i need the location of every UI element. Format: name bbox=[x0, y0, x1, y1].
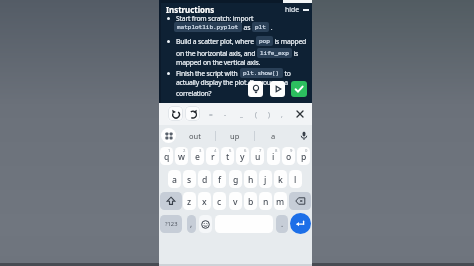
button[interactable]: 2 bbox=[175, 147, 188, 165]
button[interactable] bbox=[289, 192, 311, 210]
button[interactable]: 5 bbox=[221, 147, 234, 165]
staticText: hide bbox=[285, 5, 299, 14]
staticText: 3 bbox=[199, 148, 202, 154]
button[interactable]: 6 bbox=[236, 147, 249, 165]
staticText: ?123 bbox=[165, 220, 178, 228]
staticText: 4 bbox=[214, 148, 217, 154]
button[interactable]: n bbox=[259, 192, 272, 210]
staticText: j bbox=[264, 174, 267, 186]
button[interactable]: a bbox=[168, 170, 181, 188]
staticText: z bbox=[187, 196, 192, 208]
staticText: up bbox=[230, 131, 240, 141]
staticText: correlation? bbox=[176, 89, 212, 98]
staticText: c bbox=[217, 196, 222, 208]
button[interactable]: hide bbox=[285, 5, 309, 14]
button[interactable]: d bbox=[198, 170, 211, 188]
button[interactable]: g bbox=[229, 170, 242, 188]
staticText: 0 bbox=[305, 148, 308, 154]
staticText: Finish the script with bbox=[176, 69, 240, 78]
staticText: pop bbox=[259, 37, 270, 45]
button[interactable] bbox=[290, 213, 311, 234]
button[interactable]: h bbox=[244, 170, 257, 188]
button[interactable]: x bbox=[198, 192, 211, 210]
staticText: o bbox=[286, 151, 292, 163]
staticText: 1 bbox=[168, 148, 171, 154]
button[interactable]: 8 bbox=[267, 147, 280, 165]
button[interactable]: 7 bbox=[251, 147, 264, 165]
button[interactable]: j bbox=[259, 170, 272, 188]
button[interactable] bbox=[270, 81, 285, 97]
button[interactable]: f bbox=[213, 170, 226, 188]
staticText: a bbox=[271, 131, 276, 141]
staticText: , bbox=[281, 110, 283, 119]
staticText: y bbox=[240, 151, 245, 163]
button[interactable] bbox=[160, 192, 182, 210]
button[interactable]: ?123 bbox=[160, 215, 182, 233]
staticText: n bbox=[263, 196, 269, 208]
button[interactable]: z bbox=[183, 192, 196, 210]
button[interactable]: 0 bbox=[297, 147, 310, 165]
staticText: = bbox=[209, 110, 213, 119]
staticText: g bbox=[233, 174, 239, 186]
staticText: out bbox=[189, 131, 201, 141]
staticText: plt.show() bbox=[243, 69, 280, 77]
staticText: l bbox=[294, 174, 297, 186]
staticText: matplotlib.pyplot bbox=[177, 23, 239, 31]
staticText: is bbox=[292, 49, 299, 58]
button[interactable]: l bbox=[289, 170, 302, 188]
staticText: to bbox=[283, 69, 291, 78]
staticText: 7 bbox=[259, 148, 262, 154]
button[interactable]: v bbox=[229, 192, 242, 210]
staticText: plt bbox=[255, 23, 266, 31]
staticText: , bbox=[190, 218, 193, 229]
button[interactable] bbox=[199, 215, 212, 233]
button[interactable] bbox=[185, 106, 200, 121]
staticText: _ bbox=[240, 110, 243, 119]
staticText: as bbox=[242, 23, 252, 32]
staticText: ) bbox=[268, 110, 270, 119]
staticText: on the horizontal axis, and bbox=[176, 49, 257, 58]
staticText: s bbox=[187, 174, 192, 186]
staticText: f bbox=[218, 174, 222, 186]
button[interactable]: a bbox=[260, 127, 286, 144]
staticText: 9 bbox=[290, 148, 293, 154]
button[interactable]: up bbox=[222, 127, 248, 144]
staticText: m bbox=[276, 196, 285, 208]
staticText: k bbox=[278, 174, 283, 186]
staticText: - bbox=[224, 110, 227, 119]
button[interactable] bbox=[161, 128, 176, 143]
staticText: Build a scatter plot, where bbox=[176, 37, 256, 46]
button[interactable]: b bbox=[244, 192, 257, 210]
button[interactable]: 4 bbox=[206, 147, 219, 165]
button[interactable]: , bbox=[187, 215, 196, 233]
button[interactable]: k bbox=[274, 170, 287, 188]
button[interactable]: 9 bbox=[282, 147, 295, 165]
button[interactable]: s bbox=[183, 170, 196, 188]
staticText: 8 bbox=[275, 148, 278, 154]
button[interactable] bbox=[293, 107, 306, 120]
staticText: life_exp bbox=[260, 49, 289, 57]
staticText: 2 bbox=[183, 148, 186, 154]
staticText: p bbox=[301, 151, 307, 163]
staticText: . bbox=[269, 23, 273, 32]
staticText: . bbox=[281, 218, 284, 229]
button[interactable]: c bbox=[213, 192, 226, 210]
staticText: u bbox=[255, 151, 261, 163]
button[interactable]: m bbox=[274, 192, 287, 210]
staticText: e bbox=[195, 151, 200, 163]
button[interactable]: 3 bbox=[191, 147, 204, 165]
button[interactable] bbox=[248, 81, 263, 97]
button[interactable]: out bbox=[182, 127, 208, 144]
staticText: r bbox=[211, 151, 215, 163]
staticText: 6 bbox=[244, 148, 247, 154]
button[interactable] bbox=[295, 127, 312, 144]
button[interactable] bbox=[291, 81, 307, 97]
staticText: ( bbox=[255, 110, 257, 119]
staticText: Start from scratch: import bbox=[176, 14, 254, 23]
staticText: d bbox=[202, 174, 208, 186]
button[interactable] bbox=[168, 106, 183, 121]
button[interactable]: 1 bbox=[160, 147, 173, 165]
button[interactable]: . bbox=[276, 215, 288, 233]
staticText: actually display the plot. Do you see a bbox=[176, 78, 288, 87]
